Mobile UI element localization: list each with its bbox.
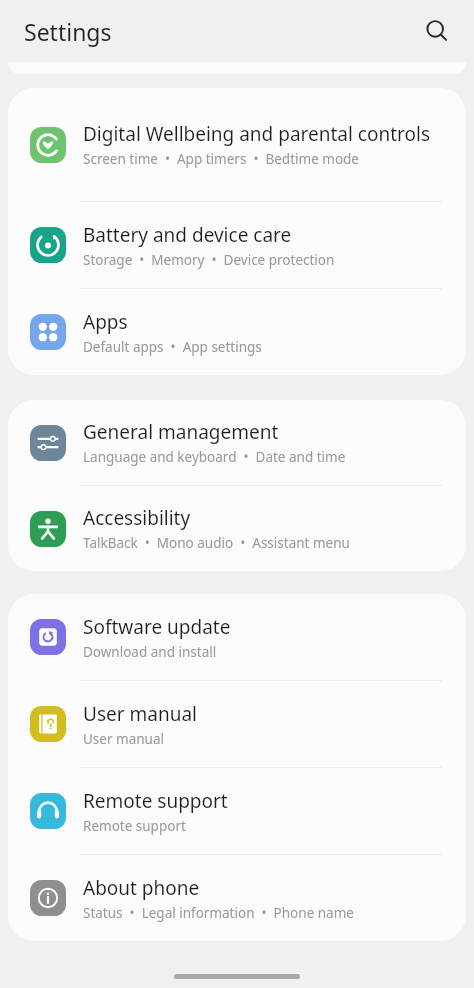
- staticText: Storage • Memory • Device protection: [83, 251, 335, 269]
- button[interactable]: User manual: [8, 681, 466, 767]
- button[interactable]: Search: [414, 8, 460, 54]
- button[interactable]: Apps: [8, 289, 466, 375]
- button[interactable]: Remote support: [8, 768, 466, 854]
- staticText: TalkBack • Mono audio • Assistant menu: [83, 534, 350, 552]
- staticText: Digital Wellbeing and parental controls: [83, 121, 431, 147]
- staticText: About phone: [83, 875, 200, 901]
- staticText: Apps: [83, 309, 128, 335]
- button[interactable]: General management: [8, 400, 466, 485]
- staticText: Remote support: [83, 817, 186, 835]
- staticText: General management: [83, 419, 279, 445]
- button[interactable]: About phone: [8, 855, 466, 941]
- staticText: User manual: [83, 730, 164, 748]
- staticText: Battery and device care: [83, 222, 292, 248]
- staticText: Software update: [83, 614, 231, 640]
- staticText: Accessibility: [83, 505, 191, 531]
- button[interactable]: Digital Wellbeing and parental controls: [8, 88, 466, 201]
- button[interactable]: Battery and device care: [8, 202, 466, 288]
- staticText: Status • Legal information • Phone name: [83, 904, 354, 922]
- staticText: User manual: [83, 701, 197, 727]
- staticText: Remote support: [83, 788, 228, 814]
- staticText: Screen time • App timers • Bedtime mode: [83, 150, 359, 168]
- button[interactable]: Software update: [8, 594, 466, 680]
- staticText: Language and keyboard • Date and time: [83, 448, 346, 466]
- staticText: Settings: [24, 16, 112, 47]
- staticText: Download and install: [83, 643, 217, 661]
- button[interactable]: Accessibility: [8, 486, 466, 571]
- staticText: Default apps • App settings: [83, 338, 262, 356]
